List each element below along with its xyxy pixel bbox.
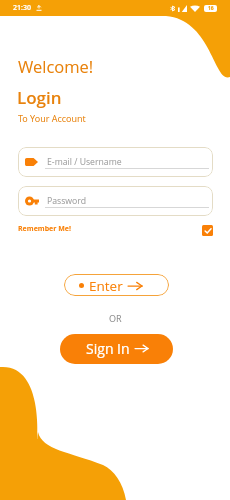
button[interactable]: Remember Me! [18,224,71,234]
staticText: To Your Account [18,112,86,124]
staticText: Sign In [86,339,130,358]
button[interactable]: Remember me checkbox [202,225,213,236]
button[interactable]: Sign In [60,334,173,364]
staticText: Password [47,195,87,207]
staticText: 16 [208,5,214,12]
staticText: Welcome! [18,55,94,77]
staticText: 21:30 [13,3,31,13]
button[interactable]: Password [18,186,213,216]
staticText: OR [109,312,122,324]
staticText: Login [17,86,62,109]
staticText: E-mail / Username [47,156,122,168]
staticText: Enter [89,277,123,295]
button[interactable]: E-mail / Username [18,147,213,177]
staticText: Remember Me! [18,224,71,234]
button[interactable]: Enter [64,274,169,296]
